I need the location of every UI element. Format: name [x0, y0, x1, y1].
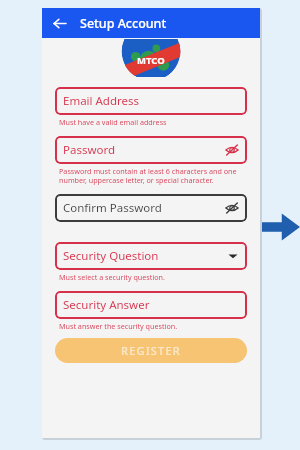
- staticText: Password: [63, 142, 116, 158]
- staticText: Must have a valid email address: [59, 117, 167, 127]
- staticText: REGISTER: [121, 343, 181, 358]
- staticText: Must select a security question.: [59, 272, 165, 282]
- staticText: Must answer the security question.: [59, 321, 178, 331]
- staticText: Setup Account: [80, 15, 167, 32]
- other: Open dropdown: [227, 250, 239, 262]
- button[interactable]: Security Answer: [55, 291, 247, 319]
- button[interactable]: Security Question: [55, 242, 247, 270]
- button[interactable]: Password: [55, 136, 247, 164]
- staticText: Security Answer: [63, 297, 150, 313]
- other: Toggle password visibility: [225, 143, 239, 157]
- button[interactable]: REGISTER: [55, 338, 247, 363]
- button[interactable]: Back: [48, 12, 70, 34]
- staticText: Email Address: [63, 93, 140, 109]
- staticText: Confirm Password: [63, 200, 162, 216]
- staticText: Security Question: [63, 248, 159, 264]
- button[interactable]: Email Address: [55, 87, 247, 115]
- staticText: MTCO: [137, 54, 165, 67]
- button[interactable]: Confirm Password: [55, 194, 247, 222]
- other: Toggle password visibility: [225, 201, 239, 215]
- staticText: Password must contain at least 6 charact…: [59, 166, 237, 185]
